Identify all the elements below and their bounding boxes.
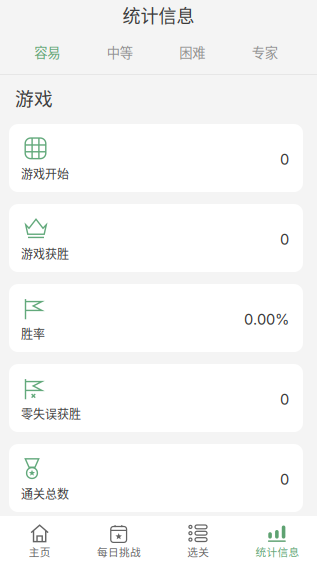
staticText: 游戏 [15, 84, 53, 111]
staticText: 游戏获胜 [21, 245, 69, 262]
staticText: 通关总数 [21, 485, 69, 502]
staticText: 困难 [179, 42, 205, 62]
staticText: 0 [280, 471, 289, 488]
button[interactable]: 游戏获胜 [9, 204, 303, 272]
staticText: 零失误获胜 [21, 405, 81, 422]
staticText: 主页 [29, 544, 51, 559]
staticText: 每日挑战 [97, 544, 141, 559]
button[interactable]: 每日挑战 [79, 524, 158, 559]
button[interactable]: 胜率 [9, 284, 303, 352]
staticText: 选关 [187, 544, 209, 559]
button[interactable]: 零失误获胜 [9, 364, 303, 432]
staticText: 0.00% [244, 311, 289, 328]
staticText: 中等 [107, 42, 133, 62]
staticText: 统计信息 [255, 544, 299, 559]
button[interactable]: 通关总数 [9, 444, 303, 512]
button[interactable]: 统计信息 [238, 524, 317, 559]
button[interactable]: 选关 [158, 524, 238, 559]
button[interactable]: 主页 [0, 524, 79, 559]
staticText: 胜率 [21, 325, 45, 342]
button[interactable]: 中等 [83, 33, 156, 70]
button[interactable]: 容易 [11, 33, 83, 70]
button[interactable]: 游戏开始 [9, 124, 303, 192]
staticText: 0 [280, 151, 289, 168]
button[interactable]: 专家 [228, 33, 301, 70]
staticText: 0 [280, 391, 289, 408]
button[interactable]: 困难 [156, 33, 228, 70]
staticText: 容易 [34, 42, 60, 62]
staticText: 游戏开始 [21, 165, 69, 182]
staticText: 0 [280, 231, 289, 248]
staticText: 统计信息 [122, 2, 194, 28]
staticText: 专家 [252, 42, 278, 62]
